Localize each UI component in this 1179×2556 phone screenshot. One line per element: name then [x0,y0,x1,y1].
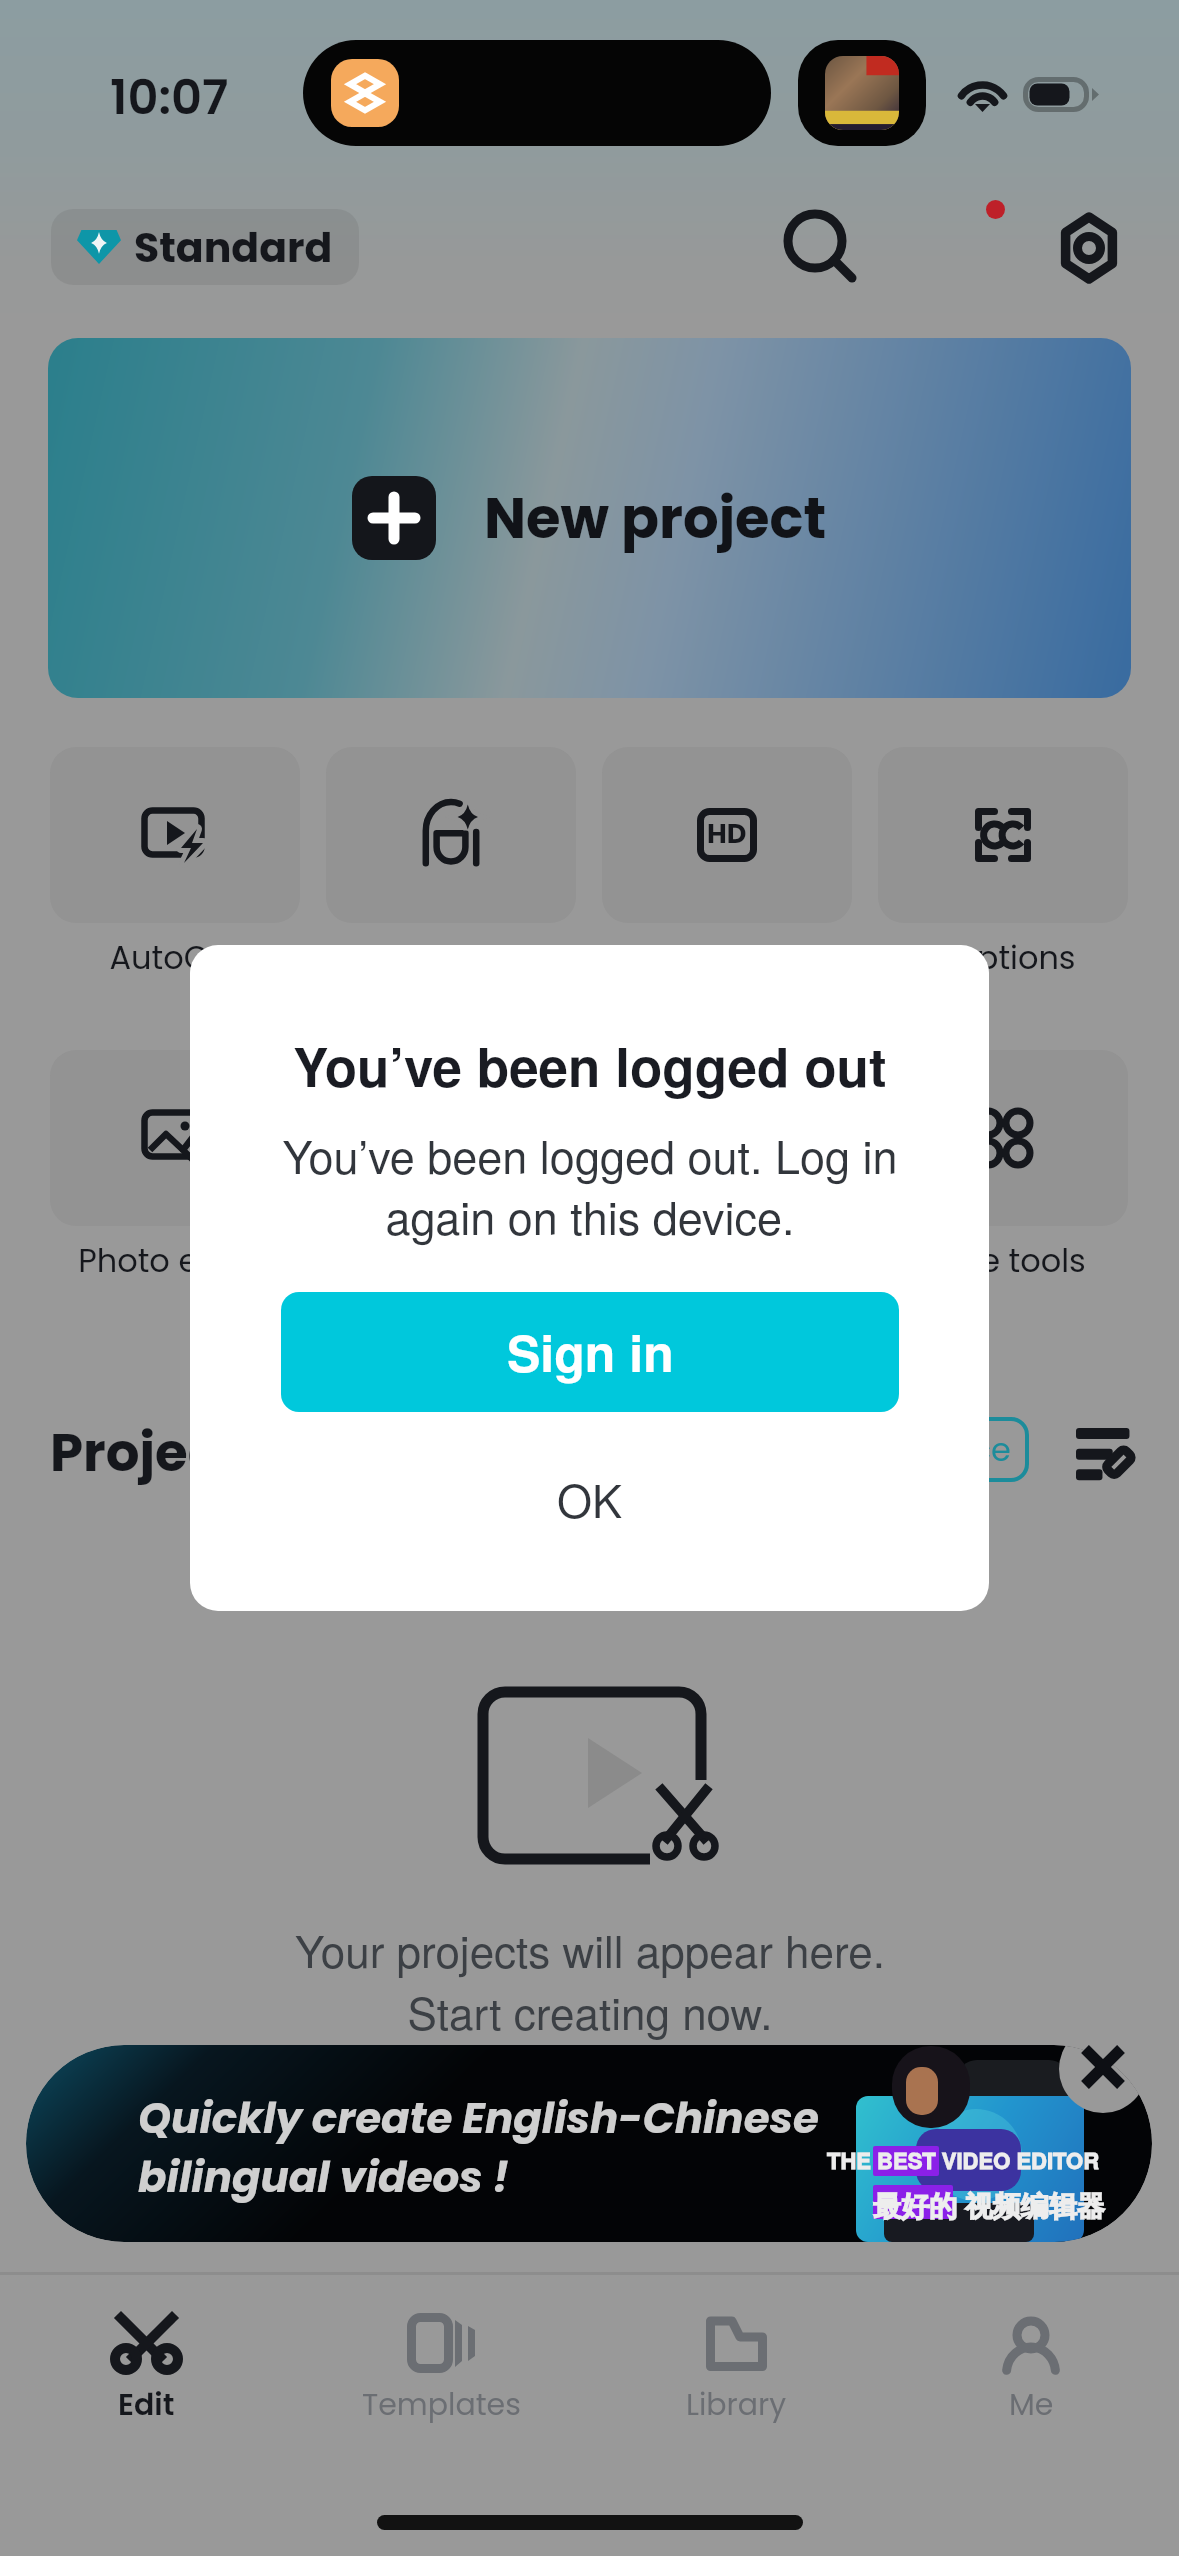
staticText: Templates [362,2384,521,2426]
staticText: HD [707,815,747,853]
staticText: Your projects will appear here. Start cr… [295,1917,885,2042]
button[interactable]: OK [281,1443,899,1553]
staticText: 最好的 视频编辑器 [873,2184,1105,2224]
button[interactable]: Remove BG [326,1050,576,1283]
button[interactable]: HD [602,747,852,980]
staticText: Photo editor [78,1238,272,1283]
button[interactable]: AutoCut [50,747,300,980]
button[interactable]: Photo editor [50,1050,300,1283]
staticText: Quickly create English-Chinese bilingual… [138,2089,819,2206]
staticText: THE BEST VIDEO EDITOR [827,2144,1100,2176]
button[interactable]: Me [891,2280,1171,2440]
staticText: You’ve been logged out [293,1027,887,1103]
button[interactable]: Quickly create English-Chinese bilingual… [26,2045,1152,2242]
button[interactable]: Search [772,198,872,298]
button[interactable]: Library [596,2280,876,2440]
staticText: Projects [50,1415,271,1489]
staticText: Upscale [663,935,792,980]
staticText: Edit [118,2384,175,2426]
button[interactable]: Sign in [281,1292,899,1412]
button[interactable]: Close ad [1051,2015,1155,2119]
staticText: 10:07 [110,64,229,131]
button[interactable]: Settings [1039,198,1139,298]
staticText: Library [686,2384,787,2426]
button[interactable]: Manage projects [1060,1408,1146,1494]
button[interactable]: New project [48,338,1131,698]
staticText: New project [484,479,827,557]
staticText: Cloud space [808,1427,1011,1472]
staticText: Standard [134,219,333,276]
staticText: Me [1009,2384,1054,2426]
button[interactable]: Cloud space [790,1417,1029,1482]
button[interactable]: Standard [51,209,359,285]
button[interactable]: More tools [878,1050,1128,1283]
staticText: More tools [920,1238,1086,1283]
button[interactable]: Templates [301,2280,581,2440]
staticText: AutoCut [109,935,241,980]
staticText: Retouch [385,935,517,980]
staticText: Sign in [507,1316,674,1388]
staticText: Remove BG [359,1238,543,1283]
button[interactable]: Enhance [602,1050,852,1283]
staticText: Captions [930,935,1076,980]
button[interactable]: Retouch [326,747,576,980]
staticText: OK [557,1466,623,1530]
button[interactable]: Captions [878,747,1128,980]
button[interactable]: Edit [6,2280,286,2440]
staticText: You’ve been logged out. Log in again on … [220,1122,960,1248]
